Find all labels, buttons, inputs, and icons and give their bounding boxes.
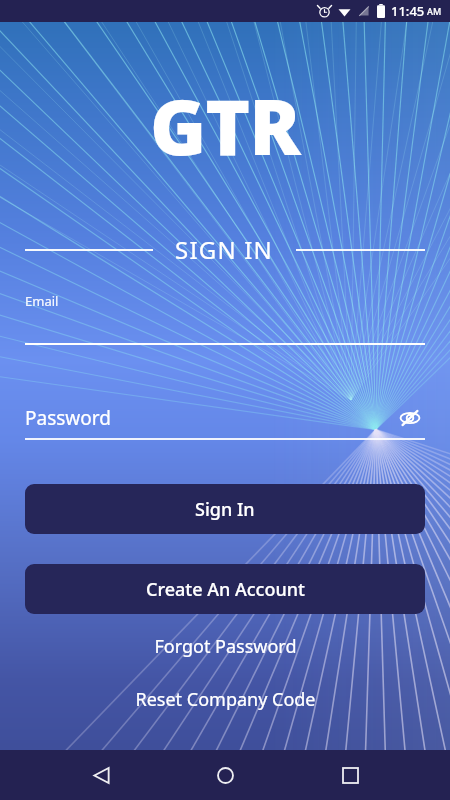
staticText: Forgot Password: [154, 634, 297, 659]
staticText: Email: [25, 292, 59, 310]
staticText: Create An Account: [146, 577, 305, 602]
staticText: AM: [427, 5, 442, 17]
staticText: 11:45: [391, 2, 425, 20]
button[interactable]: Reset Company Code: [119, 681, 332, 718]
button[interactable]: Home: [201, 751, 249, 799]
staticText: Password: [25, 405, 395, 431]
staticText: GTR: [150, 74, 300, 178]
staticText: SIGN IN: [175, 233, 274, 266]
staticText: Sign In: [195, 497, 255, 522]
staticText: Reset Company Code: [135, 687, 316, 712]
button[interactable]: Create An Account: [25, 564, 425, 614]
button[interactable]: Show password: [395, 403, 425, 433]
button[interactable]: Recent apps: [326, 751, 374, 799]
button[interactable]: Back: [77, 751, 125, 799]
button[interactable]: Sign In: [25, 484, 425, 534]
button[interactable]: Forgot Password: [138, 628, 313, 665]
